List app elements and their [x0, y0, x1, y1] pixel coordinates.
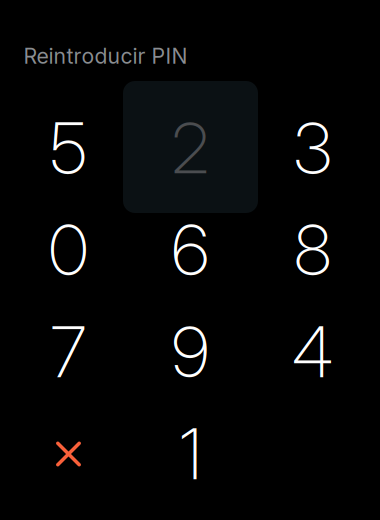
- staticText: 0: [48, 208, 88, 292]
- button[interactable]: 8: [251, 199, 373, 301]
- staticText: 6: [171, 208, 209, 292]
- button[interactable]: 1: [129, 403, 251, 505]
- staticText: 5: [50, 106, 87, 190]
- button[interactable]: 4: [251, 301, 373, 403]
- button[interactable]: 7: [7, 301, 129, 403]
- button[interactable]: 5: [7, 97, 129, 199]
- button[interactable]: 2: [129, 97, 251, 199]
- button[interactable]: Delete: [7, 403, 129, 505]
- button[interactable]: 3: [251, 97, 373, 199]
- button[interactable]: 9: [129, 301, 251, 403]
- staticText: 3: [293, 106, 331, 190]
- button[interactable]: 0: [7, 199, 129, 301]
- staticText: 1: [179, 412, 201, 496]
- staticText: 7: [50, 310, 86, 394]
- button[interactable]: 6: [129, 199, 251, 301]
- staticText: 4: [292, 310, 333, 394]
- staticText: Reintroducir PIN: [23, 43, 187, 69]
- staticText: 2: [171, 106, 209, 190]
- staticText: 8: [294, 208, 331, 292]
- staticText: 9: [171, 310, 209, 394]
